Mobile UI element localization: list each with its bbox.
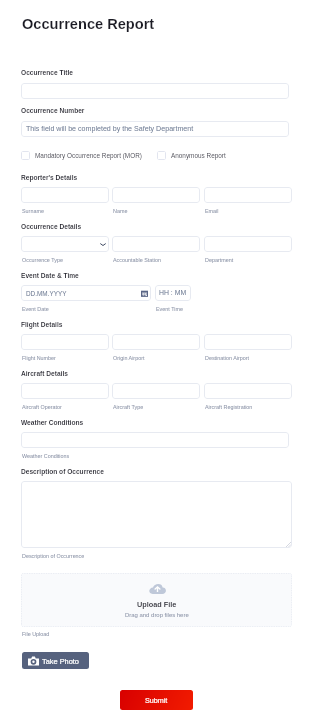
button[interactable] (21, 432, 289, 448)
staticText: Aircraft Details (21, 370, 68, 377)
staticText: Origin Airport (113, 355, 145, 361)
staticText: Occurrence Report (22, 16, 155, 32)
staticText: Submit (145, 696, 168, 704)
button[interactable] (112, 334, 200, 350)
staticText: HH : MM (159, 289, 187, 297)
staticText: Aircraft Type (113, 404, 144, 410)
staticText: Drag and drop files here (125, 612, 189, 619)
staticText: DD.MM.YYYY (26, 290, 67, 297)
button[interactable] (112, 383, 200, 399)
button[interactable] (204, 236, 292, 252)
staticText: Aircraft Registration (205, 404, 253, 410)
staticText: Occurrence Type (22, 257, 63, 263)
button[interactable]: Anonymous Report (157, 151, 226, 160)
button[interactable] (21, 187, 109, 203)
staticText: Description of Occurrence (22, 553, 85, 559)
button[interactable]: Mandatory Occurrence Report (MOR) (21, 151, 142, 160)
button[interactable] (112, 187, 200, 203)
staticText: Upload File (137, 600, 177, 608)
staticText: Occurrence Number (21, 107, 85, 114)
staticText: Mandatory Occurrence Report (MOR) (35, 152, 142, 159)
button[interactable]: DD.MM.YYYY (21, 285, 151, 301)
button[interactable] (204, 383, 292, 399)
staticText: Surname (22, 208, 44, 214)
staticText: Take Photo (42, 657, 79, 665)
button[interactable] (21, 83, 289, 99)
staticText: Occurrence Title (21, 69, 73, 76)
staticText: Accountable Station (113, 257, 161, 263)
staticText: File Upload (22, 631, 50, 637)
button[interactable] (21, 481, 292, 548)
button[interactable] (21, 334, 109, 350)
button[interactable]: Upload File (21, 573, 292, 627)
button[interactable] (204, 187, 292, 203)
staticText: Email (205, 208, 219, 214)
button[interactable] (204, 334, 292, 350)
staticText: Destination Airport (205, 355, 250, 361)
button[interactable] (21, 383, 109, 399)
button[interactable] (21, 236, 109, 252)
staticText: Department (205, 257, 234, 263)
staticText: Weather Conditions (22, 453, 70, 459)
staticText: Anonymous Report (171, 152, 226, 159)
staticText: Flight Number (22, 355, 56, 361)
staticText: Event Time (156, 306, 183, 312)
button[interactable]: Take Photo (22, 652, 89, 669)
staticText: This field will be completed by the Safe… (26, 125, 194, 133)
staticText: Occurrence Details (21, 223, 82, 230)
staticText: Description of Occurrence (21, 468, 104, 475)
button[interactable]: Submit (120, 690, 193, 710)
staticText: Event Date & Time (21, 272, 79, 279)
button[interactable] (112, 236, 200, 252)
button[interactable]: HH : MM (155, 285, 191, 301)
staticText: Weather Conditions (21, 419, 84, 426)
staticText: Aircraft Operator (22, 404, 62, 410)
staticText: Name (113, 208, 128, 214)
staticText: Flight Details (21, 321, 63, 328)
button[interactable]: This field will be completed by the Safe… (21, 121, 289, 137)
staticText: Reporter's Details (21, 174, 78, 181)
staticText: Event Date (22, 306, 49, 312)
